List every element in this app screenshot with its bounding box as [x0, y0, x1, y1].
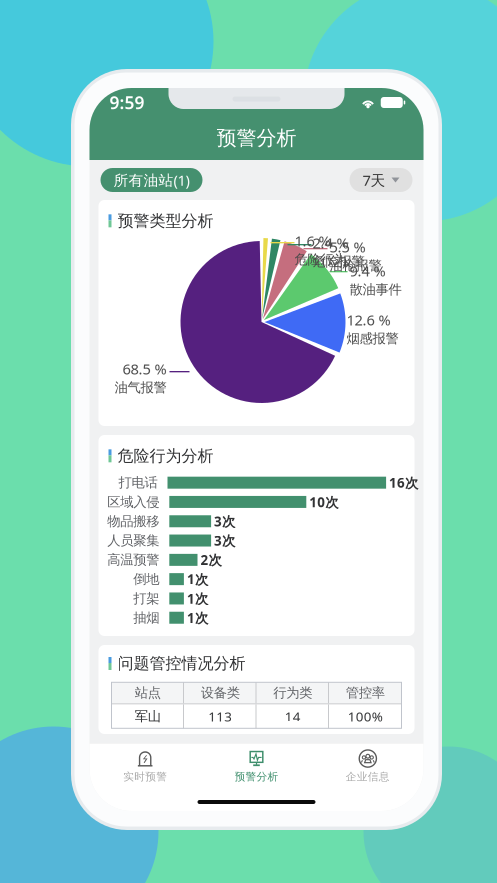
staticText: 设备类	[201, 685, 240, 701]
button[interactable]: 实时预警	[89, 744, 201, 785]
staticText: 2.4 %	[312, 233, 348, 252]
staticText: 危险报警	[312, 253, 364, 270]
staticText: 7天	[362, 170, 385, 190]
staticText: 所有油站(1)	[113, 170, 189, 190]
button[interactable]: 所有油站(1)	[100, 168, 202, 192]
staticText: 14	[285, 707, 301, 725]
staticText: 5.5 %	[329, 237, 365, 256]
staticText: 倒地	[133, 571, 159, 587]
staticText: 2次	[200, 551, 221, 569]
staticText: 站点	[135, 685, 161, 701]
staticText: 1次	[187, 590, 208, 607]
staticText: 68.5 %	[122, 359, 166, 378]
staticText: 1次	[187, 570, 208, 588]
button[interactable]: 7天	[349, 168, 412, 192]
button[interactable]: 企业信息	[312, 744, 423, 785]
staticText: 散油事件	[349, 281, 401, 298]
staticText: 100%	[348, 707, 383, 725]
staticText: 1.6 %	[294, 231, 330, 250]
staticText: 16次	[389, 474, 418, 491]
staticText: 人员聚集	[107, 532, 159, 549]
staticText: 行为类	[273, 685, 312, 701]
staticText: 抽烟	[133, 610, 159, 626]
staticText: 预警类型分析	[117, 211, 213, 231]
staticText: 1次	[187, 609, 208, 627]
staticText: 113	[208, 707, 232, 725]
staticText: 3次	[214, 532, 235, 549]
staticText: 军山	[135, 708, 161, 724]
staticText: 打架	[133, 590, 159, 607]
staticText: 实时预警	[123, 770, 167, 783]
staticText: 问题管控情况分析	[117, 654, 245, 673]
staticText: 管控率	[346, 685, 385, 701]
staticText: 物品搬移	[107, 513, 159, 529]
staticText: 打电话	[118, 474, 157, 491]
staticText: 烟感报警	[346, 330, 398, 347]
staticText: 油枪报警	[329, 257, 381, 274]
staticText: 9:59	[109, 91, 144, 114]
staticText: 3次	[214, 512, 235, 530]
staticText: 高温预警	[107, 552, 159, 568]
staticText: 预警分析	[216, 126, 296, 150]
staticText: 预警分析	[234, 770, 278, 783]
staticText: 10次	[309, 493, 338, 511]
staticText: 9.4 %	[349, 261, 385, 280]
staticText: 危险行为分析	[117, 446, 213, 466]
staticText: 企业信息	[346, 770, 390, 783]
staticText: 12.6 %	[346, 310, 390, 329]
staticText: 危险行为	[294, 251, 346, 268]
staticText: 区域入侵	[107, 494, 159, 510]
button[interactable]: 预警分析	[201, 744, 312, 785]
staticText: 油气报警	[114, 379, 166, 396]
